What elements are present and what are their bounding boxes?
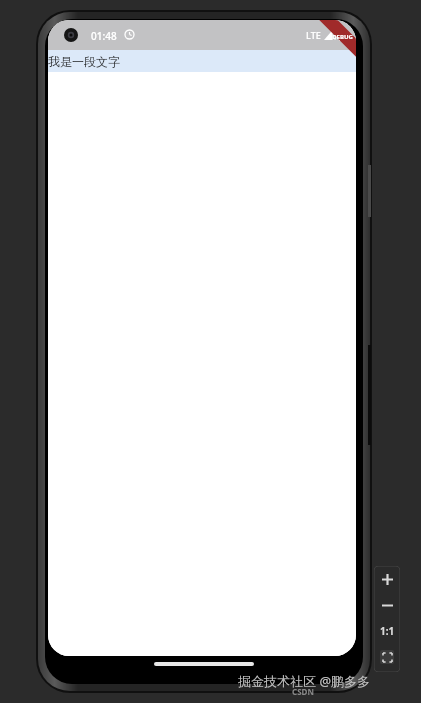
button[interactable]: Zoom in xyxy=(374,566,400,592)
button[interactable]: Zoom out xyxy=(374,592,400,618)
staticText: CSDN xyxy=(292,686,314,697)
staticText: 01:48 xyxy=(91,29,117,43)
staticText: 我是一段文字 xyxy=(48,54,120,69)
staticText: 掘金技术社区 @鹏多多 xyxy=(238,672,371,690)
button[interactable]: 我是一段文字 xyxy=(48,50,356,72)
staticText: 1:1 xyxy=(380,624,395,638)
staticText: LTE xyxy=(306,29,321,41)
button[interactable]: 1:1 xyxy=(374,618,400,644)
staticText: DEBUG xyxy=(332,33,353,41)
button[interactable]: Fit to window xyxy=(374,644,400,670)
